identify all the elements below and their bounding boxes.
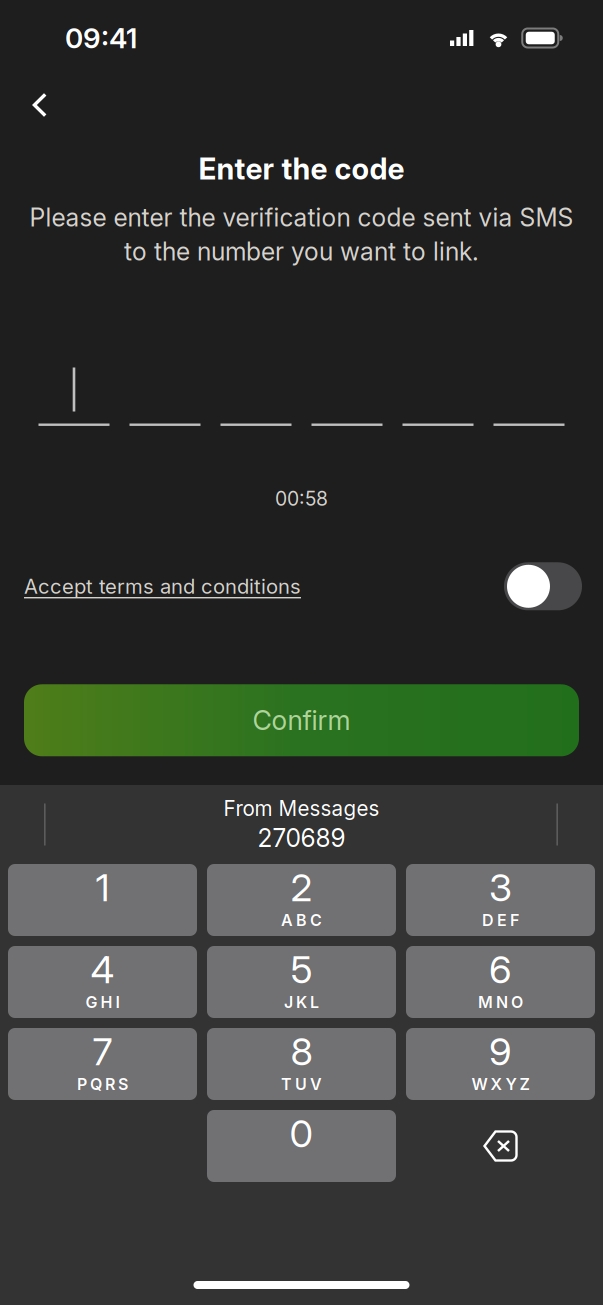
button[interactable]: 4 xyxy=(8,946,197,1018)
staticText: PQRS xyxy=(77,1074,128,1094)
staticText: Accept terms and conditions xyxy=(24,574,301,598)
button[interactable]: 5 xyxy=(207,946,396,1018)
staticText: Confirm xyxy=(252,704,350,736)
staticText: Enter the code xyxy=(198,151,404,186)
button[interactable]: 0 xyxy=(207,1110,396,1182)
staticText: 9 xyxy=(489,1028,512,1074)
staticText: 2 xyxy=(290,864,312,910)
button[interactable]: Delete xyxy=(406,1110,595,1182)
staticText: 1 xyxy=(95,864,109,910)
staticText: MNO xyxy=(478,992,523,1012)
button[interactable]: Back xyxy=(0,75,63,126)
button[interactable]: 9 xyxy=(406,1028,595,1100)
button[interactable]: 1 xyxy=(8,864,197,936)
staticText: 8 xyxy=(290,1028,312,1074)
staticText: 00:58 xyxy=(275,487,328,510)
button[interactable]: 7 xyxy=(8,1028,197,1100)
staticText: 6 xyxy=(489,946,512,992)
staticText: TUV xyxy=(281,1074,322,1094)
button[interactable]: Accept terms and conditions xyxy=(504,562,582,610)
staticText: From Messages xyxy=(223,796,379,821)
staticText: DEF xyxy=(482,910,519,930)
staticText: WXYZ xyxy=(471,1074,529,1094)
button[interactable]: 2 xyxy=(207,864,396,936)
staticText: 270689 xyxy=(257,823,345,853)
staticText: 7 xyxy=(92,1028,112,1074)
staticText: GHI xyxy=(85,992,119,1012)
button[interactable]: From Messages xyxy=(203,796,399,853)
staticText: 5 xyxy=(290,946,312,992)
button[interactable]: 6 xyxy=(406,946,595,1018)
staticText: 4 xyxy=(90,946,114,992)
staticText: to the number you want to link. xyxy=(124,236,479,266)
staticText: ABC xyxy=(281,910,322,930)
staticText: 3 xyxy=(489,864,512,910)
button[interactable]: 8 xyxy=(207,1028,396,1100)
button[interactable]: Confirm xyxy=(24,684,579,756)
button[interactable]: Accept terms and conditions xyxy=(24,566,301,606)
staticText: 09:41 xyxy=(65,21,137,55)
staticText: 0 xyxy=(289,1110,313,1156)
staticText: JKL xyxy=(284,992,319,1012)
button[interactable]: 3 xyxy=(406,864,595,936)
staticText: Please enter the verification code sent … xyxy=(29,202,573,232)
